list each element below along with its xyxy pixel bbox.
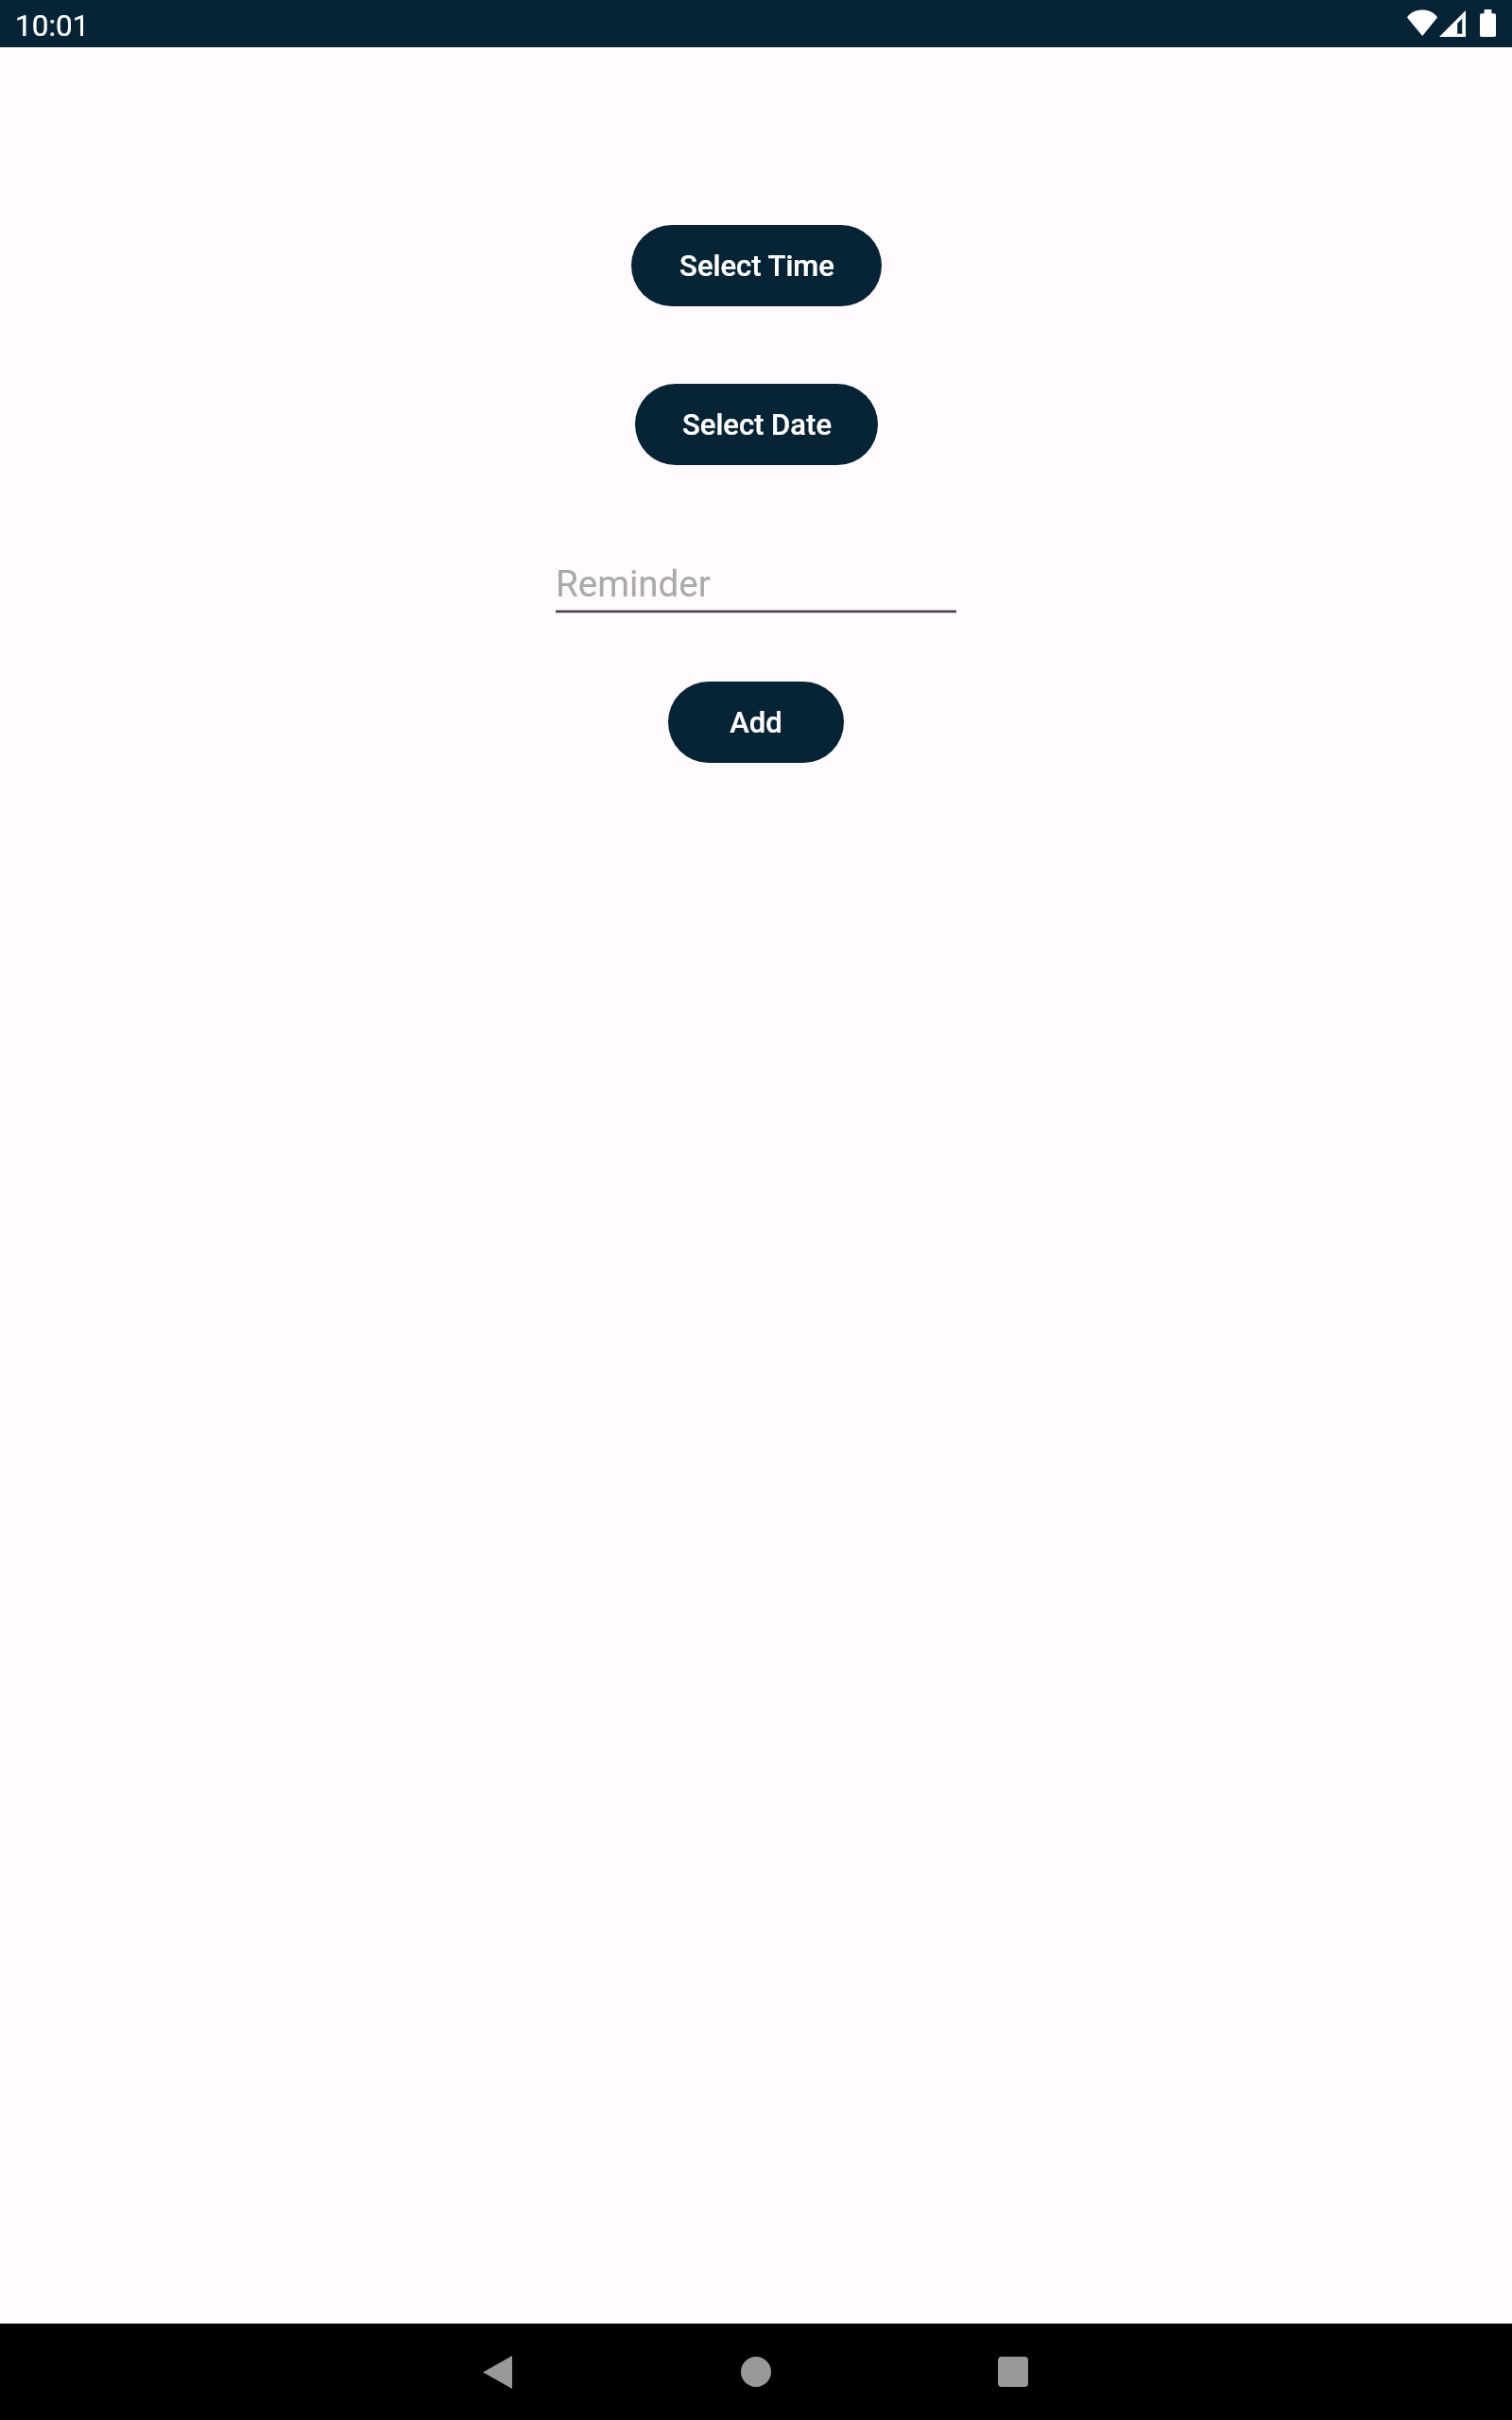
staticText: 10:01 [15,9,90,43]
staticText: Select Time [679,249,834,283]
staticText: Reminder [556,562,711,605]
staticText: Add [730,705,782,739]
button[interactable]: Back [451,2324,545,2418]
button[interactable]: Select Time [631,225,882,306]
button[interactable]: Add [668,682,844,763]
button[interactable]: Recent apps [966,2324,1060,2418]
button[interactable]: Select Date [635,384,878,465]
button[interactable]: Home [709,2324,803,2418]
staticText: Select Date [682,407,832,441]
button[interactable]: Reminder [556,562,956,614]
